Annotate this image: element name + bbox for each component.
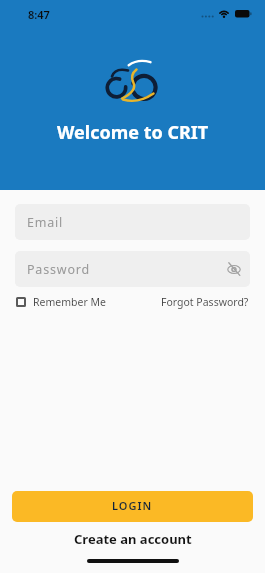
button[interactable]: Create an account: [74, 530, 192, 548]
button[interactable]: LOGIN: [12, 491, 253, 522]
button[interactable]: Email: [15, 204, 250, 240]
staticText: Remember Me: [33, 295, 106, 309]
staticText: Welcome to CRIT: [57, 120, 209, 145]
staticText: LOGIN: [112, 498, 153, 513]
button[interactable]: Forgot Password?: [161, 295, 249, 309]
staticText: Email: [27, 214, 64, 231]
button[interactable]: Remember Me: [16, 295, 106, 309]
staticText: 8:47: [28, 7, 50, 22]
button[interactable]: Password: [15, 251, 250, 287]
staticText: Password: [27, 261, 90, 278]
